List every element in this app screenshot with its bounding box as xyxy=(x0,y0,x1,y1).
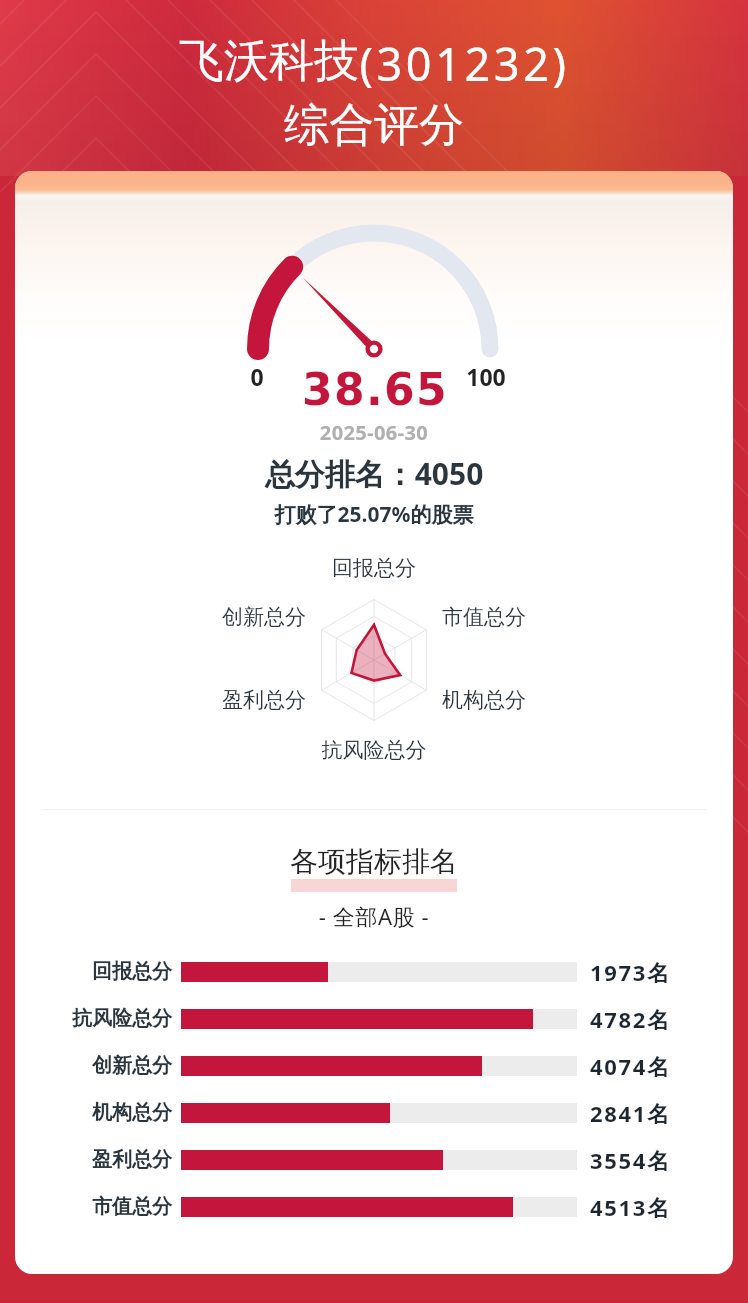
staticText: 综合评分 xyxy=(4,97,744,154)
staticText: 100 xyxy=(446,361,526,392)
staticText: 机构总分 xyxy=(92,1100,172,1125)
button[interactable]: 机构总分 xyxy=(15,1089,733,1136)
staticText: 总分排名：4050 xyxy=(74,453,674,494)
staticText: 回报总分 xyxy=(92,959,172,984)
button[interactable]: 创新总分 xyxy=(15,1042,733,1089)
staticText: 市值总分 xyxy=(384,604,584,630)
staticText: 各项指标排名 xyxy=(74,844,674,879)
staticText: 4074名 xyxy=(590,1051,671,1081)
button[interactable]: 抗风险总分 xyxy=(15,995,733,1042)
staticText: 盈利总分 xyxy=(92,1147,172,1172)
staticText: (301232) xyxy=(359,33,570,94)
staticText: 创新总分 xyxy=(92,1053,172,1078)
button[interactable]: 盈利总分 xyxy=(15,1136,733,1183)
staticText: 2841名 xyxy=(590,1098,671,1128)
button[interactable]: 市值总分 xyxy=(15,1183,733,1230)
staticText: 1973名 xyxy=(590,957,671,987)
staticText: 4782名 xyxy=(590,1004,671,1034)
staticText: 打败了25.07%的股票 xyxy=(74,500,674,529)
staticText: - 全部A股 - xyxy=(74,901,674,931)
button[interactable]: 回报总分 xyxy=(15,948,733,995)
staticText: 市值总分 xyxy=(92,1194,172,1219)
staticText: 0 xyxy=(227,361,287,392)
staticText: 38.65 xyxy=(115,364,635,415)
staticText: 3554名 xyxy=(590,1145,671,1175)
staticText: 盈利总分 xyxy=(164,687,364,713)
staticText: 4513名 xyxy=(590,1192,671,1222)
staticText: 机构总分 xyxy=(384,687,584,713)
staticText: 2025-06-30 xyxy=(174,419,574,446)
staticText: 创新总分 xyxy=(164,604,364,630)
staticText: 飞沃科技 xyxy=(179,33,359,90)
staticText: 抗风险总分 xyxy=(72,1006,172,1031)
staticText: 回报总分 xyxy=(274,555,474,581)
staticText: 抗风险总分 xyxy=(254,737,494,763)
